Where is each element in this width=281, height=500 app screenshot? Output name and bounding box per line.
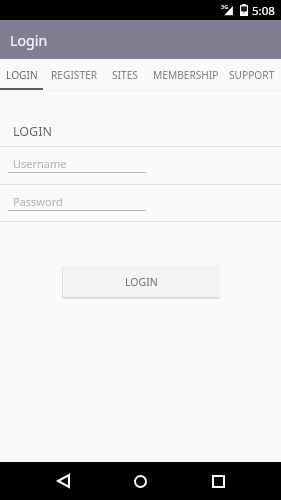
button[interactable]: Recent apps <box>198 462 238 500</box>
button[interactable]: SITES <box>104 59 145 90</box>
staticText: LOGIN <box>125 275 158 289</box>
button[interactable]: Home <box>120 462 160 500</box>
staticText: Username <box>13 156 67 171</box>
button[interactable]: SUPPORT <box>224 59 279 90</box>
button[interactable]: REGISTER <box>44 59 104 90</box>
staticText: 3G <box>221 3 229 10</box>
staticText: SITES <box>112 68 138 82</box>
button[interactable]: Username <box>0 147 281 184</box>
staticText: LOGIN <box>6 68 38 82</box>
staticText: SUPPORT <box>229 68 275 82</box>
staticText: MEMBERSHIP <box>153 68 219 82</box>
button[interactable]: MEMBERSHIP <box>145 59 226 90</box>
staticText: REGISTER <box>51 68 98 82</box>
button[interactable]: Password <box>0 185 281 222</box>
staticText: Login <box>10 31 48 50</box>
staticText: LOGIN <box>13 123 52 140</box>
button[interactable]: LOGIN <box>63 265 220 297</box>
button[interactable]: LOGIN <box>0 59 44 90</box>
button[interactable]: Back <box>43 462 83 500</box>
staticText: 5:08 <box>252 3 275 19</box>
staticText: Password <box>13 194 63 209</box>
